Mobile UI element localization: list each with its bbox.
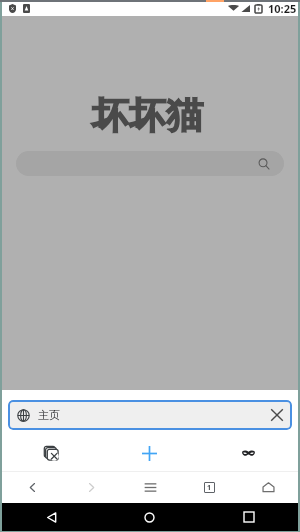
button[interactable] bbox=[16, 151, 284, 176]
button[interactable]: Home bbox=[239, 472, 298, 503]
button[interactable]: Menu bbox=[121, 472, 180, 503]
staticText: 坏坏猫 bbox=[92, 92, 203, 139]
button[interactable]: Clear bbox=[264, 402, 290, 428]
button[interactable]: Tabs bbox=[180, 472, 239, 503]
staticText: 10:25 bbox=[268, 1, 297, 16]
button[interactable]: Back bbox=[2, 472, 62, 503]
button[interactable]: Close tabs bbox=[2, 435, 100, 471]
button[interactable]: Incognito bbox=[199, 435, 298, 471]
staticText: 主页 bbox=[38, 408, 60, 422]
button[interactable]: New tab bbox=[100, 435, 199, 471]
button[interactable]: 主页 bbox=[8, 400, 292, 430]
button[interactable]: Forward bbox=[62, 472, 121, 503]
staticText: 1 bbox=[207, 483, 212, 493]
